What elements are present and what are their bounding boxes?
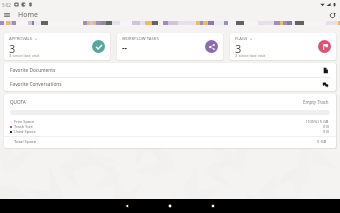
button[interactable]: Open navigation menu [0, 9, 13, 21]
button[interactable]: WORKFLOW TASKS [117, 33, 223, 60]
staticText: 0 B [323, 129, 329, 134]
button[interactable]: Favorite Documents [4, 63, 336, 77]
staticText: Favorite Conversations [10, 81, 62, 88]
button[interactable]: FLAGS [318, 40, 331, 53]
staticText: Empty Trash [303, 99, 329, 105]
staticText: WORKFLOW TASKS [122, 36, 159, 42]
staticText: FLAGS [235, 36, 248, 42]
staticText: Favorite Documents [10, 67, 56, 74]
staticText: -- [122, 42, 128, 53]
button[interactable]: FLAGS [230, 33, 336, 60]
button[interactable]: WORKFLOW TASKS [205, 40, 218, 53]
staticText: 0 B [323, 124, 329, 129]
staticText: Free Space [14, 119, 35, 124]
button[interactable]: Recent apps [206, 199, 220, 213]
button[interactable]: Favorite Conversations [4, 78, 336, 91]
staticText: QUOTA [10, 99, 26, 105]
button[interactable]: Empty Trash [303, 99, 329, 105]
button[interactable]: Home [163, 199, 177, 213]
staticText: 5:02 [2, 2, 11, 8]
staticText: 3 [235, 41, 242, 56]
staticText: Trash Size [14, 124, 33, 129]
staticText: 3 [9, 41, 16, 56]
staticText: Total Space [14, 139, 37, 145]
staticText: Home [18, 10, 38, 20]
button[interactable]: APPROVALS [4, 33, 110, 60]
staticText: 3 since last visit [235, 53, 266, 59]
button[interactable]: Refresh [326, 9, 338, 21]
staticText: 5 GB [317, 139, 327, 145]
staticText: (100%) 5 GB [306, 119, 329, 124]
button[interactable]: APPROVALS [92, 40, 105, 53]
button[interactable]: Back [120, 199, 134, 213]
staticText: APPROVALS [9, 36, 33, 42]
staticText: 3 since last visit [9, 53, 40, 59]
staticText: Used Space [14, 129, 36, 134]
